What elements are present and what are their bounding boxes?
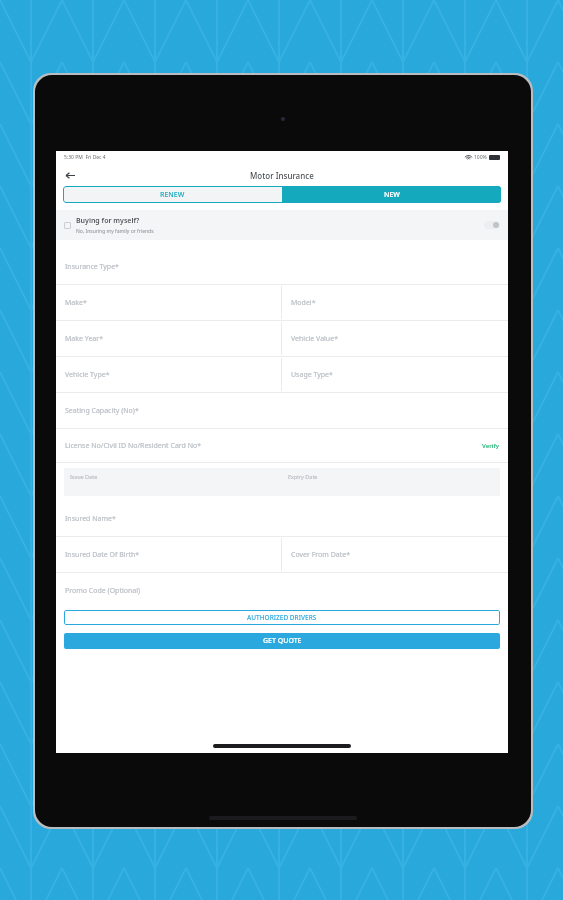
staticText: Insurance Type* xyxy=(65,262,119,272)
staticText: Motor Insurance xyxy=(250,170,314,181)
staticText: Make Year* xyxy=(65,334,104,344)
button[interactable]: RENEW xyxy=(63,186,282,203)
button[interactable]: Issue Date xyxy=(64,468,282,496)
staticText: GET QUOTE xyxy=(263,636,302,646)
staticText: License No/Civil ID No/Resident Card No* xyxy=(65,441,202,451)
button[interactable]: NEW xyxy=(282,186,501,203)
staticText: Cover From Date* xyxy=(291,550,351,560)
button[interactable]: Insured Date Of Birth* xyxy=(65,537,281,572)
staticText: 100% xyxy=(474,154,487,161)
staticText: Verify xyxy=(482,442,499,450)
staticText: Seating Capacity (No)* xyxy=(65,406,139,416)
staticText: NEW xyxy=(384,190,400,200)
button[interactable]: Expiry Date xyxy=(282,468,500,496)
staticText: AUTHORIZED DRIVERS xyxy=(247,613,317,622)
button[interactable]: Vehicle Type* xyxy=(65,357,281,392)
staticText: Promo Code (Optional) xyxy=(65,586,141,596)
staticText: Insured Date Of Birth* xyxy=(65,550,140,560)
staticText: Issue Date xyxy=(70,473,98,480)
button[interactable]: Insurance Type* xyxy=(65,249,508,284)
button[interactable]: Verify xyxy=(482,442,499,450)
button[interactable]: Vehicle Value* xyxy=(291,321,508,356)
staticText: Vehicle Type* xyxy=(65,370,110,380)
staticText: Expiry Date xyxy=(288,473,318,480)
button[interactable]: Back xyxy=(62,167,78,183)
button[interactable]: Insured Name* xyxy=(65,501,508,536)
button[interactable]: Buying for myself toggle xyxy=(484,221,500,229)
staticText: Vehicle Value* xyxy=(291,334,338,344)
button[interactable]: Make Year* xyxy=(65,321,281,356)
button[interactable]: Cover From Date* xyxy=(291,537,508,572)
staticText: Usage Type* xyxy=(291,370,333,380)
staticText: 5:30 PM Fri Dec 4 xyxy=(64,154,106,161)
button[interactable]: Promo Code (Optional) xyxy=(65,573,508,608)
staticText: Make* xyxy=(65,298,87,308)
staticText: RENEW xyxy=(160,190,185,200)
button[interactable]: Usage Type* xyxy=(291,357,508,392)
button[interactable]: GET QUOTE xyxy=(64,633,500,649)
button[interactable]: License No/Civil ID No/Resident Card No* xyxy=(65,429,499,462)
staticText: No, Insuring my family or friends xyxy=(76,228,154,235)
button[interactable]: Model* xyxy=(291,285,508,320)
staticText: Buying for myself? xyxy=(76,216,140,226)
staticText: Model* xyxy=(291,298,316,308)
button[interactable]: Make* xyxy=(65,285,281,320)
button[interactable]: Buying for myself? xyxy=(64,210,500,240)
staticText: Insured Name* xyxy=(65,514,116,524)
button[interactable]: Seating Capacity (No)* xyxy=(65,393,508,428)
button[interactable]: AUTHORIZED DRIVERS xyxy=(64,610,500,625)
